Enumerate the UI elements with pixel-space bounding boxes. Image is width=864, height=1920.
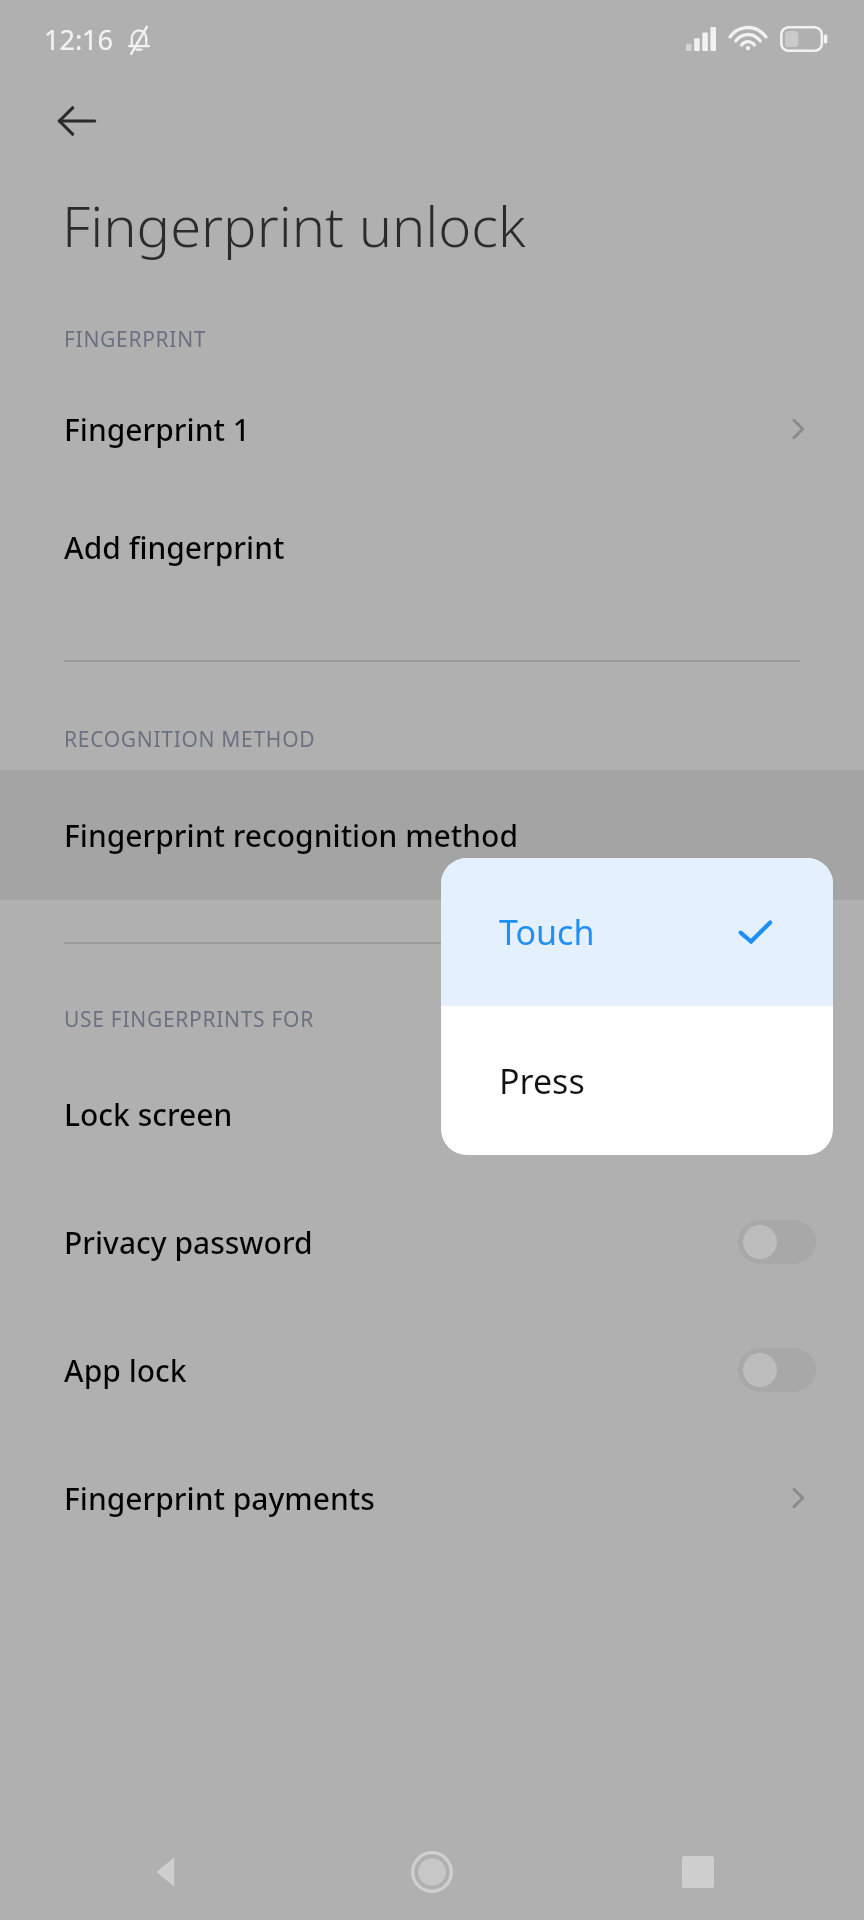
button[interactable]: Home xyxy=(396,1836,468,1908)
staticText: Add fingerprint xyxy=(64,527,816,568)
button[interactable] xyxy=(738,1220,816,1264)
button[interactable]: Back xyxy=(50,94,104,148)
staticText: USE FINGERPRINTS FOR xyxy=(64,1005,314,1034)
button[interactable]: Fingerprint payments xyxy=(0,1434,864,1562)
button[interactable]: Fingerprint recognition method xyxy=(0,770,864,900)
staticText: RECOGNITION METHOD xyxy=(64,725,316,754)
button[interactable]: App lock xyxy=(0,1306,864,1434)
button[interactable]: Touch xyxy=(441,858,833,1006)
staticText: 12:16 xyxy=(44,21,114,58)
staticText: App lock xyxy=(64,1350,738,1391)
staticText: Lock screen xyxy=(64,1094,738,1135)
staticText: Fingerprint recognition method xyxy=(64,815,816,856)
staticText: Touch xyxy=(499,909,735,955)
staticText: Press xyxy=(499,1058,585,1104)
button[interactable]: Lock screen xyxy=(0,1050,864,1178)
staticText: Privacy password xyxy=(64,1222,738,1263)
button[interactable]: Fingerprint 1 xyxy=(0,370,864,488)
button[interactable]: Open Fingerprint payments xyxy=(780,1480,816,1516)
button[interactable]: Recents xyxy=(662,1836,734,1908)
button[interactable]: Back xyxy=(130,1836,202,1908)
staticText: Fingerprint unlock xyxy=(62,187,526,263)
button[interactable]: Press xyxy=(441,1006,833,1155)
button[interactable]: Privacy password xyxy=(0,1178,864,1306)
button[interactable] xyxy=(738,1348,816,1392)
button[interactable]: Add fingerprint xyxy=(0,488,864,606)
staticText: Fingerprint payments xyxy=(64,1478,780,1519)
staticText: FINGERPRINT xyxy=(64,325,207,354)
button[interactable]: Open Fingerprint 1 xyxy=(780,411,816,447)
staticText: Fingerprint 1 xyxy=(64,409,780,450)
